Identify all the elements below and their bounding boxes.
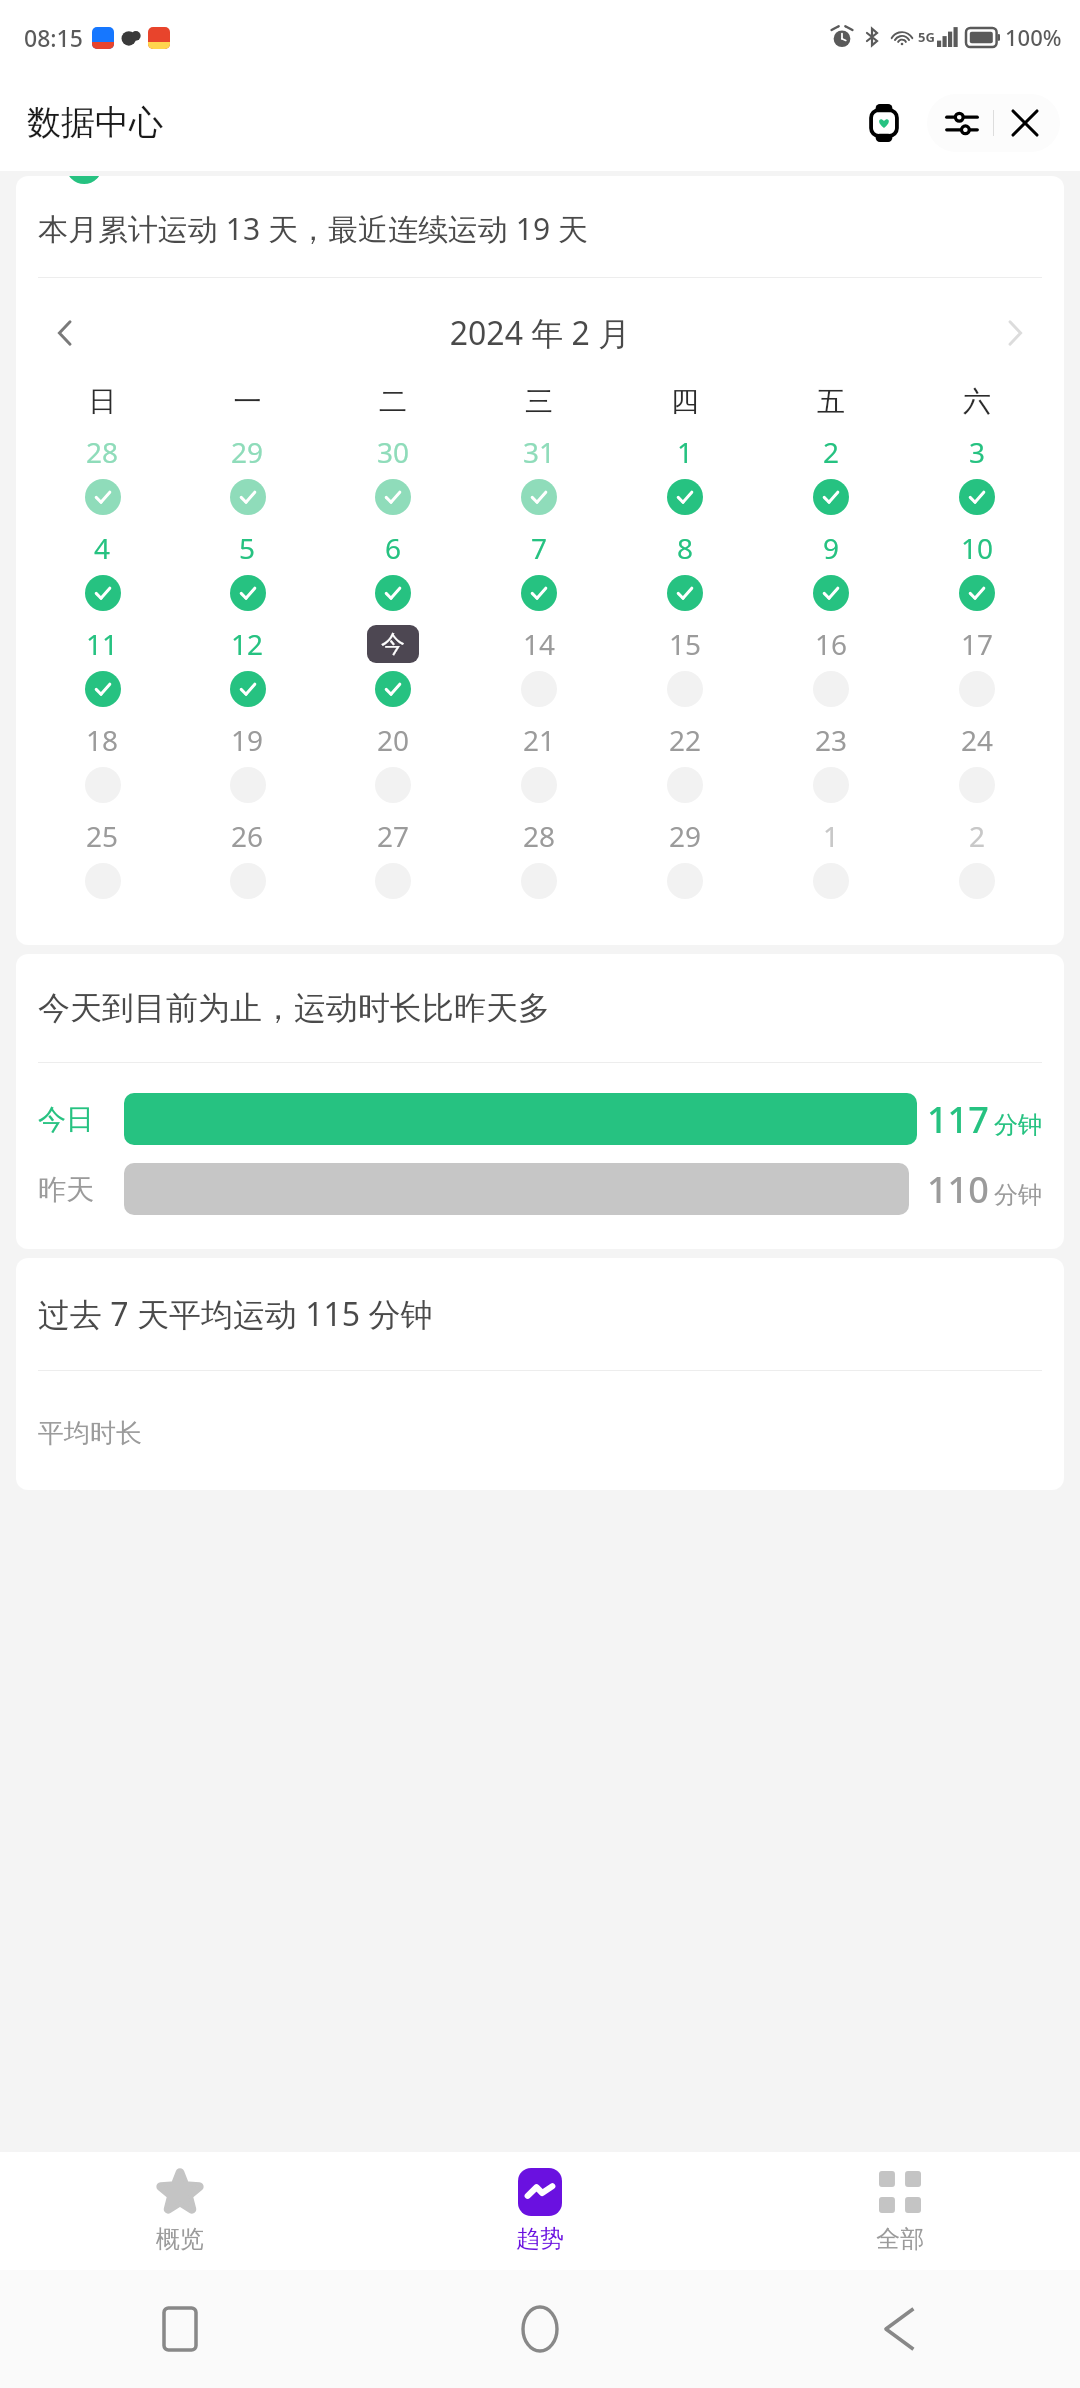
staticText: 五	[758, 384, 904, 419]
staticText: 117	[927, 1095, 989, 1144]
staticText: 28	[523, 817, 556, 855]
button[interactable]: 6	[320, 529, 466, 611]
staticText: 21	[523, 721, 556, 759]
staticText: 20	[377, 721, 410, 759]
staticText: 28	[86, 433, 119, 471]
button[interactable]: 1	[758, 817, 904, 899]
staticText: 14	[523, 625, 556, 663]
button[interactable]: 24	[904, 721, 1050, 803]
button[interactable]: 28	[466, 817, 612, 899]
button[interactable]: Home	[360, 2270, 720, 2388]
staticText: 18	[86, 721, 119, 759]
button[interactable]: 概览	[0, 2152, 360, 2270]
staticText: 8	[677, 529, 694, 567]
button[interactable]: 30	[320, 433, 466, 515]
staticText: 16	[815, 625, 848, 663]
staticText: 平均时长	[38, 1417, 142, 1450]
staticText: 6	[385, 529, 402, 567]
staticText: 1	[677, 433, 694, 471]
staticText: 四	[612, 384, 758, 419]
button[interactable]: 18	[30, 721, 175, 803]
button[interactable]: 全部	[720, 2152, 1080, 2270]
button[interactable]: 7	[466, 529, 612, 611]
staticText: 全部	[876, 2224, 924, 2254]
button[interactable]: 3	[904, 433, 1050, 515]
staticText: 27	[377, 817, 410, 855]
staticText: 100%	[1005, 22, 1062, 52]
staticText: 今日	[38, 1102, 124, 1137]
staticText: 5G	[918, 28, 935, 46]
button[interactable]: Back	[720, 2270, 1080, 2388]
staticText: 趋势	[516, 2224, 564, 2254]
button[interactable]: 4	[30, 529, 175, 611]
staticText: 31	[523, 433, 556, 471]
button[interactable]: 16	[758, 625, 904, 707]
button[interactable]: Recents	[0, 2270, 360, 2388]
button[interactable]: 22	[612, 721, 758, 803]
button[interactable]: 21	[466, 721, 612, 803]
staticText: 110	[927, 1165, 989, 1214]
staticText: 19	[231, 721, 264, 759]
button[interactable]: 趋势	[360, 2152, 720, 2270]
staticText: 23	[815, 721, 848, 759]
button[interactable]: 23	[758, 721, 904, 803]
button[interactable]: 2	[758, 433, 904, 515]
staticText: 29	[669, 817, 702, 855]
staticText: 昨天	[38, 1172, 124, 1207]
button[interactable]: 17	[904, 625, 1050, 707]
staticText: 17	[961, 625, 994, 663]
staticText: 7	[531, 529, 548, 567]
button[interactable]: 20	[320, 721, 466, 803]
button[interactable]: 1	[612, 433, 758, 515]
staticText: 11	[86, 625, 119, 663]
button[interactable]: 14	[466, 625, 612, 707]
button[interactable]: 26	[175, 817, 320, 899]
staticText: 分钟	[994, 1110, 1042, 1140]
staticText: 一	[175, 384, 320, 419]
button[interactable]: 8	[612, 529, 758, 611]
button[interactable]: 10	[904, 529, 1050, 611]
staticText: 日	[30, 384, 175, 419]
staticText: 六	[904, 384, 1050, 419]
button[interactable]: Close	[994, 94, 1056, 152]
staticText: 12	[231, 625, 264, 663]
button[interactable]: 15	[612, 625, 758, 707]
staticText: 今天到目前为止，运动时长比昨天多	[38, 988, 550, 1028]
button[interactable]: Watch device	[857, 96, 911, 150]
staticText: 9	[823, 529, 840, 567]
button[interactable]: 25	[30, 817, 175, 899]
staticText: 08:15	[24, 22, 83, 53]
button[interactable]: 31	[466, 433, 612, 515]
button[interactable]: 5	[175, 529, 320, 611]
button[interactable]: Previous month	[30, 298, 100, 368]
button[interactable]: 2	[904, 817, 1050, 899]
staticText: 4	[94, 529, 111, 567]
staticText: 1	[823, 817, 840, 855]
button[interactable]: 28	[30, 433, 175, 515]
button[interactable]: 11	[30, 625, 175, 707]
staticText: 2	[969, 817, 986, 855]
staticText: 29	[231, 433, 264, 471]
button[interactable]: 12	[175, 625, 320, 707]
button[interactable]: 27	[320, 817, 466, 899]
staticText: 26	[231, 817, 264, 855]
staticText: 15	[669, 625, 702, 663]
staticText: 本月累计运动 13 天，最近连续运动 19 天	[38, 208, 588, 249]
staticText: 22	[669, 721, 702, 759]
button[interactable]: Next month	[980, 298, 1050, 368]
button[interactable]: 今	[320, 625, 466, 707]
staticText: 25	[86, 817, 119, 855]
staticText: 5	[239, 529, 256, 567]
button[interactable]: 9	[758, 529, 904, 611]
button[interactable]: 19	[175, 721, 320, 803]
staticText: 24	[961, 721, 994, 759]
button[interactable]: Settings	[931, 94, 993, 152]
staticText: 二	[320, 384, 466, 419]
button[interactable]: 29	[612, 817, 758, 899]
staticText: 3	[969, 433, 986, 471]
staticText: 数据中心	[27, 101, 163, 144]
button[interactable]: 29	[175, 433, 320, 515]
staticText: 三	[466, 384, 612, 419]
staticText: 2024 年 2 月	[100, 311, 980, 355]
staticText: 概览	[156, 2224, 204, 2254]
